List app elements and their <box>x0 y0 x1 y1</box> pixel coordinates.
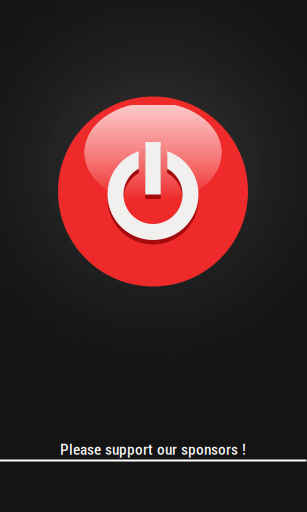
button[interactable]: Power <box>58 96 248 286</box>
button[interactable]: Please support our sponsors ! <box>60 440 246 458</box>
staticText: Please support our sponsors ! <box>60 440 246 458</box>
